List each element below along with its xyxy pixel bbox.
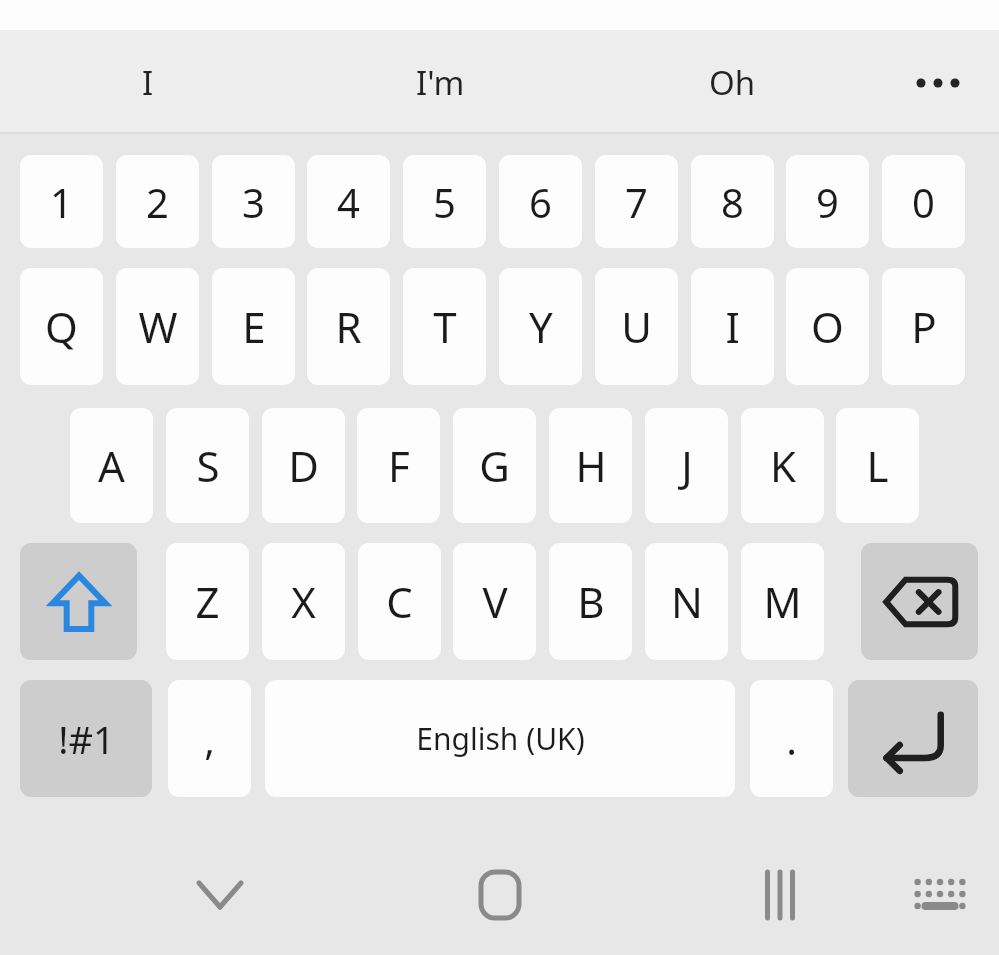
button[interactable]: 3 bbox=[212, 155, 295, 248]
staticText: M bbox=[763, 573, 802, 630]
button[interactable]: Home bbox=[440, 845, 560, 945]
staticText: V bbox=[482, 573, 508, 630]
button[interactable]: I bbox=[58, 40, 238, 125]
button[interactable]: O bbox=[786, 268, 869, 385]
button[interactable]: Hide keyboard bbox=[160, 845, 280, 945]
button[interactable]: D bbox=[262, 408, 345, 523]
button[interactable]: Change keyboard bbox=[890, 855, 990, 935]
button[interactable]: Oh bbox=[642, 40, 822, 125]
button[interactable]: L bbox=[836, 408, 919, 523]
staticText: 0 bbox=[912, 175, 935, 229]
button[interactable]: , bbox=[168, 680, 251, 797]
button[interactable]: B bbox=[549, 543, 632, 660]
staticText: 2 bbox=[146, 175, 169, 229]
button[interactable]: I'm bbox=[350, 40, 530, 125]
button[interactable]: I bbox=[691, 268, 774, 385]
staticText: 1 bbox=[50, 175, 73, 229]
staticText: I'm bbox=[416, 60, 465, 105]
staticText: P bbox=[911, 298, 937, 355]
button[interactable]: 6 bbox=[499, 155, 582, 248]
staticText: H bbox=[575, 437, 607, 494]
button[interactable]: !#1 bbox=[20, 680, 152, 797]
staticText: . bbox=[786, 712, 797, 766]
button[interactable]: 5 bbox=[403, 155, 486, 248]
staticText: B bbox=[577, 573, 605, 630]
staticText: Oh bbox=[709, 60, 756, 105]
staticText: S bbox=[196, 437, 220, 494]
staticText: I bbox=[725, 298, 740, 355]
staticText: English (UK) bbox=[416, 718, 585, 759]
button[interactable]: U bbox=[595, 268, 678, 385]
button[interactable]: M bbox=[741, 543, 824, 660]
button[interactable]: E bbox=[212, 268, 295, 385]
staticText: Y bbox=[529, 298, 553, 355]
button[interactable]: . bbox=[750, 680, 833, 797]
staticText: T bbox=[433, 298, 457, 355]
staticText: U bbox=[621, 298, 652, 355]
staticText: 3 bbox=[242, 175, 265, 229]
button[interactable]: R bbox=[307, 268, 390, 385]
button[interactable]: W bbox=[116, 268, 199, 385]
button[interactable]: J bbox=[645, 408, 728, 523]
button[interactable]: 9 bbox=[786, 155, 869, 248]
staticText: 7 bbox=[625, 175, 648, 229]
button[interactable]: Z bbox=[166, 543, 249, 660]
button[interactable]: 1 bbox=[20, 155, 103, 248]
staticText: 8 bbox=[721, 175, 744, 229]
button[interactable]: 2 bbox=[116, 155, 199, 248]
staticText: N bbox=[671, 573, 703, 630]
button[interactable]: More suggestions bbox=[888, 40, 988, 125]
staticText: O bbox=[811, 298, 844, 355]
button[interactable]: A bbox=[70, 408, 153, 523]
staticText: 5 bbox=[433, 175, 456, 229]
staticText: W bbox=[138, 298, 178, 355]
button[interactable]: F bbox=[357, 408, 440, 523]
button[interactable]: S bbox=[166, 408, 249, 523]
button[interactable]: Enter bbox=[848, 680, 978, 797]
button[interactable]: Shift bbox=[20, 543, 137, 660]
staticText: 9 bbox=[816, 175, 839, 229]
button[interactable]: G bbox=[453, 408, 536, 523]
staticText: !#1 bbox=[58, 713, 115, 765]
staticText: X bbox=[291, 573, 316, 630]
staticText: E bbox=[242, 298, 266, 355]
button[interactable]: 0 bbox=[882, 155, 965, 248]
staticText: G bbox=[479, 437, 510, 494]
button[interactable]: K bbox=[741, 408, 824, 523]
button[interactable]: T bbox=[403, 268, 486, 385]
button[interactable]: 8 bbox=[691, 155, 774, 248]
button[interactable]: H bbox=[549, 408, 632, 523]
staticText: , bbox=[204, 712, 215, 766]
staticText: C bbox=[386, 573, 413, 630]
button[interactable]: Q bbox=[20, 268, 103, 385]
button[interactable]: N bbox=[645, 543, 728, 660]
button[interactable]: Y bbox=[499, 268, 582, 385]
button[interactable]: C bbox=[358, 543, 441, 660]
staticText: Q bbox=[45, 298, 78, 355]
staticText: D bbox=[288, 437, 319, 494]
button[interactable]: V bbox=[453, 543, 536, 660]
button[interactable]: X bbox=[262, 543, 345, 660]
staticText: J bbox=[681, 437, 693, 494]
staticText: 6 bbox=[529, 175, 552, 229]
button[interactable]: 4 bbox=[307, 155, 390, 248]
staticText: F bbox=[388, 437, 410, 494]
button[interactable]: Backspace bbox=[861, 543, 978, 660]
staticText: K bbox=[770, 437, 796, 494]
staticText: L bbox=[866, 437, 889, 494]
button[interactable]: 7 bbox=[595, 155, 678, 248]
button[interactable]: Recent apps bbox=[720, 845, 840, 945]
staticText: Z bbox=[195, 573, 220, 630]
button[interactable]: P bbox=[882, 268, 965, 385]
staticText: 4 bbox=[337, 175, 360, 229]
staticText: R bbox=[335, 298, 362, 355]
staticText: I bbox=[142, 60, 154, 105]
staticText: A bbox=[98, 437, 125, 494]
button[interactable]: English (UK) bbox=[265, 680, 735, 797]
